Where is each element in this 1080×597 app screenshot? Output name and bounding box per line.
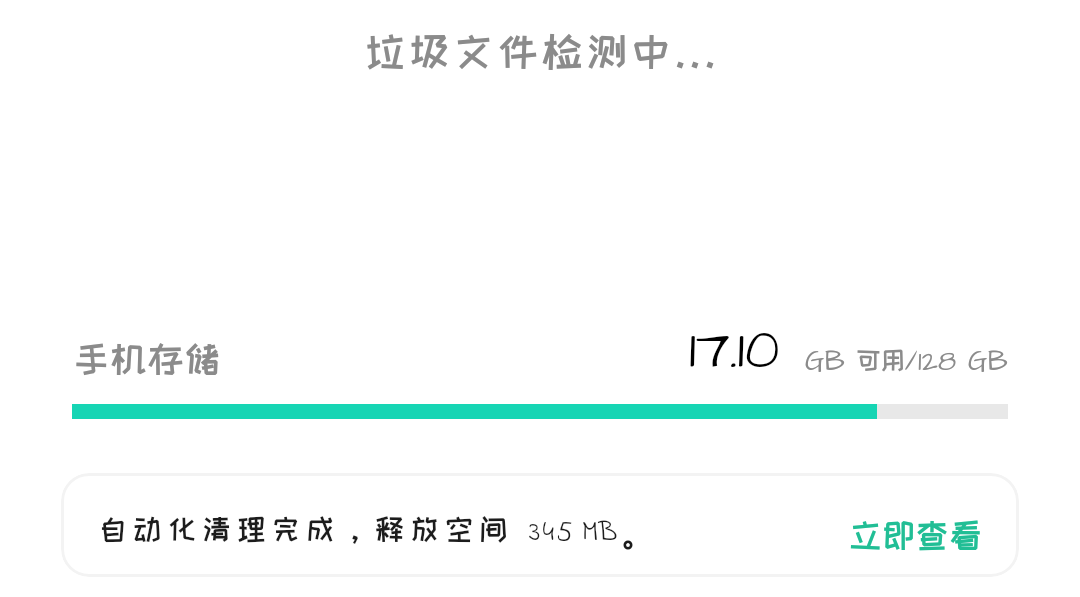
button[interactable]: 自动化清理完成，释放空间 345 MB [61,473,1019,577]
staticText: 17.10 [689,313,780,389]
staticText: 手机存储 [74,340,222,378]
button[interactable]: 立即查看 [847,511,985,558]
staticText: 立即查看 [849,517,983,552]
staticText: 垃圾文件检测中... [3,30,1080,72]
staticText: 自动化清理完成，释放空间 345 MB [99,513,618,554]
staticText: GB 可用/128 GB [805,342,1008,381]
other: Storage usage [72,404,1008,419]
